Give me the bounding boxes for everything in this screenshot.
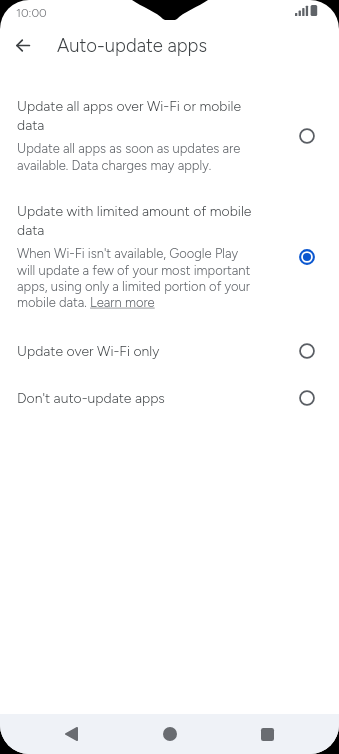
button[interactable]: Recent apps bbox=[247, 714, 287, 754]
button[interactable]: Update with limited amount of mobile dat… bbox=[0, 203, 339, 310]
button[interactable]: Don't auto-update apps bbox=[0, 377, 339, 419]
button[interactable]: Selected option bbox=[286, 236, 328, 278]
staticText: 10:00 bbox=[16, 6, 47, 20]
staticText: When Wi-Fi isn't available, Google Play … bbox=[17, 246, 255, 310]
staticText: Update over Wi-Fi only bbox=[17, 343, 160, 360]
staticText: Don't auto-update apps bbox=[17, 390, 165, 407]
button[interactable]: Unselected option bbox=[286, 377, 328, 419]
staticText: Update all apps over Wi-Fi or mobile dat… bbox=[17, 98, 255, 134]
staticText: Update all apps as soon as updates are a… bbox=[17, 141, 255, 173]
button[interactable]: Update all apps over Wi-Fi or mobile dat… bbox=[0, 98, 339, 173]
staticText: Update with limited amount of mobile dat… bbox=[17, 203, 255, 239]
button[interactable]: Unselected option bbox=[286, 330, 328, 372]
button[interactable]: Back bbox=[51, 714, 91, 754]
button[interactable]: Home bbox=[150, 714, 190, 754]
button[interactable]: Unselected option bbox=[286, 115, 328, 157]
staticText: Auto-update apps bbox=[57, 34, 208, 56]
button[interactable]: Update over Wi-Fi only bbox=[0, 330, 339, 372]
button[interactable]: Back bbox=[4, 27, 41, 64]
